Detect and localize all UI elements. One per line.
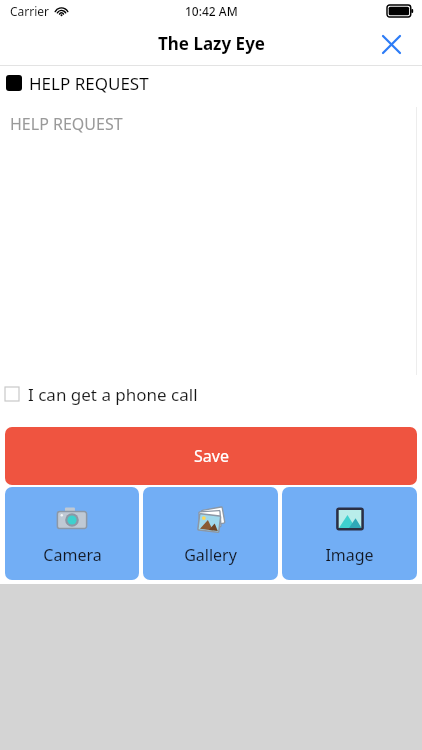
staticText: Save <box>194 445 229 467</box>
button[interactable]: Camera <box>5 487 139 580</box>
staticText: The Lazy Eye <box>158 32 265 55</box>
button[interactable]: HELP REQUEST <box>0 100 422 375</box>
staticText: HELP REQUEST <box>10 113 123 135</box>
button[interactable]: I can get a phone call <box>0 375 422 413</box>
staticText: HELP REQUEST <box>29 72 149 95</box>
staticText: 10:42 AM <box>185 3 238 19</box>
staticText: Image <box>325 544 374 566</box>
staticText: Carrier <box>10 3 50 19</box>
button[interactable]: Save <box>5 427 417 485</box>
staticText: Gallery <box>184 544 237 566</box>
staticText: I can get a phone call <box>28 383 198 406</box>
staticText: Camera <box>43 544 102 566</box>
button[interactable]: Gallery <box>143 487 278 580</box>
button[interactable]: Image <box>282 487 417 580</box>
button[interactable]: Close <box>374 27 408 61</box>
